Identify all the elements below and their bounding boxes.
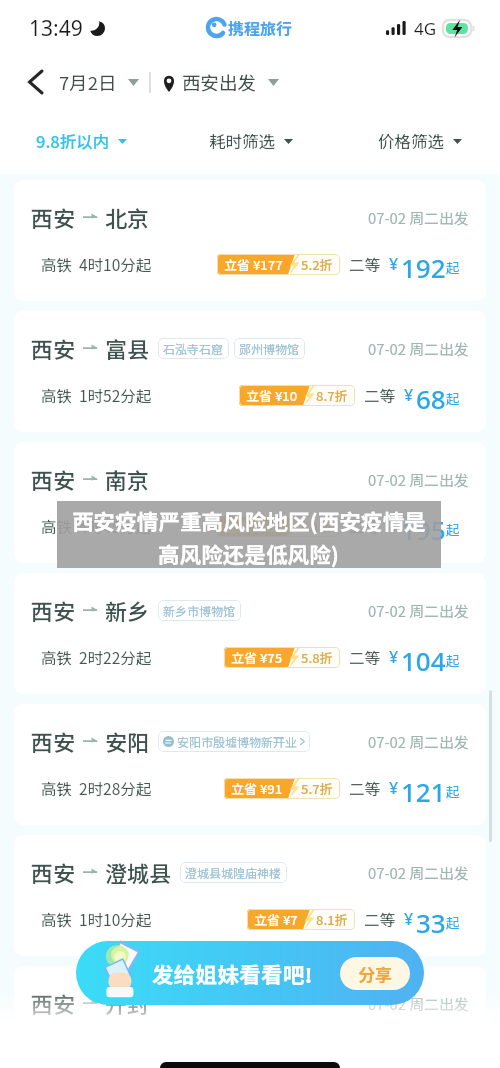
staticText: 高铁 2时22分起 bbox=[41, 646, 152, 668]
staticText: ¥ bbox=[404, 384, 414, 406]
staticText: 富县 bbox=[105, 332, 150, 364]
staticText: ¥ bbox=[389, 777, 399, 799]
staticText: 68 bbox=[416, 381, 446, 409]
staticText: 立省 ¥7 bbox=[254, 910, 298, 929]
staticText: 立省 ¥75 bbox=[231, 648, 283, 667]
staticText: 西安 bbox=[31, 987, 76, 1019]
staticText: 起 bbox=[446, 388, 460, 408]
staticText: 高铁 2时28分起 bbox=[41, 777, 152, 799]
staticText: 起 bbox=[446, 781, 460, 801]
button[interactable]: Back bbox=[14, 61, 56, 103]
staticText: 携程旅行 bbox=[228, 16, 293, 39]
staticText: 北京 bbox=[105, 201, 150, 233]
staticText: 高铁 1时10分起 bbox=[41, 908, 152, 930]
staticText: 07-02 周二出发 bbox=[368, 338, 469, 359]
staticText: 立省 ¥177 bbox=[224, 255, 283, 274]
staticText: 开封 bbox=[105, 987, 150, 1019]
staticText: 33 bbox=[416, 905, 446, 933]
staticText: ¥ bbox=[389, 646, 399, 668]
button[interactable]: 西安 bbox=[14, 180, 486, 301]
staticText: 安阳 bbox=[105, 725, 150, 757]
staticText: 澄城县 bbox=[105, 856, 172, 888]
button[interactable]: 西安出发 bbox=[162, 63, 279, 102]
staticText: 起 bbox=[446, 912, 460, 932]
staticText: 分享 bbox=[358, 961, 392, 986]
staticText: 13:49 bbox=[29, 14, 83, 43]
staticText: 新乡市博物馆 bbox=[163, 602, 236, 619]
staticText: 104 bbox=[401, 643, 446, 671]
staticText: 07-02 周二出发 bbox=[368, 600, 469, 621]
staticText: 西安 bbox=[31, 725, 76, 757]
staticText: 耗时筛选 bbox=[209, 129, 275, 153]
button[interactable]: 分享 bbox=[340, 957, 410, 990]
staticText: 9.8折以内 bbox=[36, 129, 110, 153]
staticText: 澄城县城隍庙神楼 bbox=[185, 864, 282, 881]
staticText: 5.2折 bbox=[301, 255, 333, 274]
staticText: 8.7折 bbox=[316, 386, 348, 405]
staticText: 西安 bbox=[31, 332, 76, 364]
staticText: 高铁 4时10分起 bbox=[41, 253, 152, 275]
staticText: 新乡 bbox=[105, 594, 150, 626]
button[interactable]: 西安 bbox=[14, 311, 486, 432]
staticText: 二等 bbox=[364, 384, 396, 406]
staticText: ¥ bbox=[389, 253, 399, 275]
button[interactable] bbox=[76, 941, 424, 1005]
staticText: 起 bbox=[446, 257, 460, 277]
staticText: 西安 bbox=[31, 594, 76, 626]
staticText: 高风险还是低风险) bbox=[158, 538, 340, 568]
staticText: ¥ bbox=[404, 908, 414, 930]
staticText: 起 bbox=[446, 519, 460, 539]
staticText: 6.1折 bbox=[301, 517, 333, 536]
button[interactable]: 西安 bbox=[14, 835, 486, 956]
staticText: 西安 bbox=[31, 201, 76, 233]
staticText: 郧州博物馆 bbox=[239, 340, 300, 357]
staticText: 立省 ¥10 bbox=[246, 386, 298, 405]
button[interactable]: 耗时筛选 bbox=[209, 108, 293, 174]
staticText: 二等 bbox=[364, 908, 396, 930]
staticText: 二等 bbox=[349, 253, 381, 275]
button[interactable]: 9.8折以内 bbox=[36, 108, 127, 174]
staticText: 价格筛选 bbox=[378, 129, 444, 153]
staticText: 二等 bbox=[349, 646, 381, 668]
button[interactable]: 价格筛选 bbox=[378, 108, 462, 174]
staticText: 192 bbox=[401, 250, 446, 278]
staticText: 07-02 周二出发 bbox=[368, 862, 469, 883]
button[interactable]: 7月2日 bbox=[59, 63, 139, 102]
button[interactable]: 西安 bbox=[14, 442, 486, 563]
staticText: 起 bbox=[446, 650, 460, 670]
staticText: 西安 bbox=[31, 856, 76, 888]
staticText: 4G bbox=[414, 17, 437, 40]
staticText: 立省 ¥134 bbox=[224, 517, 283, 536]
staticText: 石泓寺石窟 bbox=[163, 340, 224, 357]
staticText: 二等 bbox=[349, 777, 381, 799]
staticText: 高铁 4时45分起 bbox=[41, 515, 152, 537]
staticText: ¥ bbox=[389, 515, 399, 537]
staticText: 8.1折 bbox=[316, 910, 348, 929]
staticText: 高铁 1时52分起 bbox=[41, 384, 152, 406]
staticText: 发给姐妹看看吧! bbox=[152, 958, 313, 989]
staticText: 121 bbox=[401, 774, 446, 802]
staticText: 安阳市殷墟博物新开业 bbox=[177, 733, 298, 750]
button[interactable]: 西安 bbox=[14, 966, 486, 1063]
staticText: 5.7折 bbox=[301, 779, 333, 798]
staticText: 5.8折 bbox=[301, 648, 333, 667]
staticText: 西安 bbox=[31, 463, 76, 495]
staticText: 07-02 周二出发 bbox=[368, 993, 469, 1014]
staticText: 二等 bbox=[349, 515, 381, 537]
button[interactable]: 西安 bbox=[14, 573, 486, 694]
staticText: 西安疫情严重高风险地区(西安疫情是 bbox=[72, 505, 426, 536]
staticText: 07-02 周二出发 bbox=[368, 207, 469, 228]
staticText: 7月2日 bbox=[59, 69, 117, 96]
staticText: 07-02 周二出发 bbox=[368, 731, 469, 752]
button[interactable]: 西安 bbox=[14, 704, 486, 825]
staticText: 西安出发 bbox=[182, 69, 257, 96]
staticText: 195 bbox=[401, 512, 446, 540]
staticText: 07-02 周二出发 bbox=[368, 469, 469, 490]
